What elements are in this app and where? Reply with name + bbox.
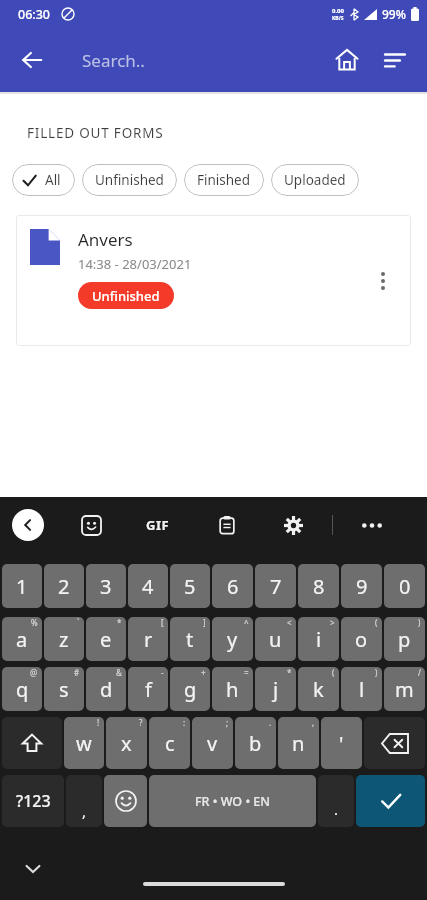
staticText: r [144, 626, 153, 653]
button[interactable]: c [149, 717, 190, 769]
button[interactable]: a [2, 617, 42, 661]
button[interactable]: 9 [341, 564, 382, 608]
button[interactable]: v [192, 717, 233, 769]
staticText: Unfinished [92, 287, 160, 305]
button[interactable]: e [86, 617, 126, 661]
button[interactable]: b [235, 717, 276, 769]
button[interactable]: Enter [356, 775, 425, 827]
button[interactable]: FR • WO • EN [149, 775, 316, 827]
button[interactable]: Stickers [74, 508, 108, 542]
staticText: , [312, 717, 315, 728]
button[interactable]: 4 [128, 564, 168, 608]
button[interactable]: Sort [371, 36, 419, 84]
button[interactable]: Emoji [104, 775, 147, 827]
button[interactable]: Unfinished [82, 164, 177, 196]
button[interactable]: x [106, 717, 147, 769]
button[interactable]: 6 [212, 564, 253, 608]
staticText: e [100, 626, 112, 653]
button[interactable]: ' [321, 717, 362, 769]
button[interactable]: 2 [44, 564, 84, 608]
staticText: t [186, 626, 194, 653]
button[interactable]: l [341, 667, 382, 711]
staticText: = [244, 667, 249, 678]
staticText: z [59, 626, 69, 653]
button[interactable]: Hide keyboard [16, 852, 50, 886]
button[interactable]: d [86, 667, 126, 711]
button[interactable]: k [298, 667, 339, 711]
staticText: 1 [16, 573, 28, 600]
button[interactable]: More options [361, 259, 405, 303]
button[interactable]: 3 [86, 564, 126, 608]
button[interactable]: Back [8, 36, 56, 84]
staticText: & [116, 667, 122, 678]
staticText: y [227, 626, 238, 653]
button[interactable]: ?123 [2, 775, 64, 827]
button[interactable]: t [170, 617, 210, 661]
button[interactable]: Shift [2, 717, 62, 769]
staticText: l [359, 676, 365, 703]
button[interactable]: 5 [170, 564, 210, 608]
button[interactable]: 7 [255, 564, 296, 608]
button[interactable]: s [44, 667, 84, 711]
staticText: x [121, 730, 132, 757]
button[interactable]: 1 [2, 564, 42, 608]
button[interactable]: o [341, 617, 382, 661]
staticText: s [59, 676, 69, 703]
button[interactable]: h [212, 667, 253, 711]
button[interactable]: p [384, 617, 425, 661]
button[interactable]: z [44, 617, 84, 661]
button[interactable]: Unfinished [78, 282, 174, 309]
staticText: KB/S [332, 15, 344, 22]
button[interactable]: n [278, 717, 319, 769]
button[interactable]: w [64, 717, 104, 769]
staticText: Unfinished [95, 171, 164, 189]
staticText: @ [30, 667, 38, 678]
staticText: / [418, 667, 421, 678]
button[interactable]: j [255, 667, 296, 711]
button[interactable]: Backspace [364, 717, 425, 769]
button[interactable]: q [2, 667, 42, 711]
staticText: 4 [142, 573, 154, 600]
staticText: , [82, 801, 87, 821]
button[interactable]: Finished [184, 164, 264, 196]
button[interactable]: Expand toolbar [12, 509, 44, 541]
button[interactable]: Anvers [16, 215, 411, 346]
staticText: f [145, 676, 152, 703]
button[interactable]: All [12, 164, 75, 196]
button[interactable]: 0 [384, 564, 425, 608]
button[interactable]: i [298, 617, 339, 661]
button[interactable]: , [66, 775, 102, 827]
staticText: 06:30 [18, 6, 51, 23]
button[interactable]: r [128, 617, 168, 661]
button[interactable]: g [170, 667, 210, 711]
staticText: 99% [382, 6, 406, 22]
button[interactable]: u [255, 617, 296, 661]
button[interactable]: Uploaded [271, 164, 359, 196]
staticText: Anvers [78, 228, 133, 251]
staticText: ? [139, 717, 143, 728]
staticText: * [287, 667, 292, 678]
staticText: ' [339, 730, 344, 757]
staticText: Uploaded [284, 171, 346, 189]
button[interactable]: 8 [298, 564, 339, 608]
button[interactable]: y [212, 617, 253, 661]
staticText: 8 [313, 573, 325, 600]
staticText: FR • WO • EN [195, 793, 271, 810]
button[interactable]: . [318, 775, 354, 827]
button[interactable]: GIF [138, 505, 178, 545]
staticText: * [117, 617, 122, 628]
button[interactable]: Settings [276, 508, 310, 542]
staticText: j [273, 676, 279, 703]
staticText: < [287, 617, 292, 628]
button[interactable]: m [384, 667, 425, 711]
button[interactable]: More [355, 508, 389, 542]
staticText: i [316, 626, 322, 653]
button[interactable]: Clipboard [210, 508, 244, 542]
button[interactable]: f [128, 667, 168, 711]
staticText: 14:38 - 28/03/2021 [78, 255, 192, 273]
staticText: o [355, 626, 368, 653]
staticText: # [74, 667, 80, 678]
staticText: 7 [270, 573, 282, 600]
staticText: Finished [197, 171, 251, 189]
button[interactable]: Home [323, 36, 371, 84]
